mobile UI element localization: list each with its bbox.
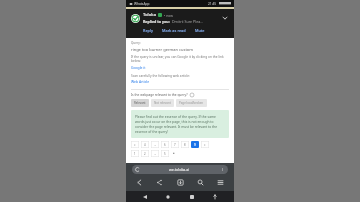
staticText: Is the webpage relevant to the query? bbox=[131, 93, 188, 97]
button[interactable]: Not relevant bbox=[151, 99, 174, 107]
button[interactable]: 6 bbox=[161, 141, 169, 148]
staticText: 2 bbox=[144, 152, 146, 156]
button[interactable]: » bbox=[201, 141, 209, 148]
staticText: 9 bbox=[194, 143, 196, 147]
staticText: ▪ bbox=[173, 152, 175, 155]
button[interactable]: Relevant bbox=[131, 99, 149, 107]
staticText: 5 bbox=[164, 152, 166, 156]
staticText: … bbox=[154, 143, 157, 147]
button[interactable]: Google it bbox=[131, 65, 146, 70]
staticText: Reply bbox=[143, 28, 153, 33]
button[interactable]: 7 bbox=[171, 141, 179, 148]
staticText: 7 bbox=[174, 143, 176, 147]
button[interactable]: Share bbox=[154, 177, 165, 188]
staticText: 21:45 bbox=[208, 2, 217, 6]
button[interactable]: « bbox=[131, 141, 139, 148]
staticText: » bbox=[204, 143, 206, 147]
staticText: Relevant bbox=[134, 101, 146, 105]
staticText: 6 bbox=[164, 143, 166, 147]
staticText: 1 bbox=[134, 152, 136, 156]
button[interactable]: Expand notification bbox=[221, 14, 229, 22]
button[interactable]: 2 bbox=[141, 150, 149, 157]
staticText: Query: bbox=[131, 41, 141, 45]
button[interactable]: Keyboard bbox=[210, 192, 220, 202]
staticText: Mark as read bbox=[162, 28, 186, 33]
staticText: ringe too burner german custom bbox=[131, 47, 194, 52]
button[interactable]: Back bbox=[140, 192, 150, 202]
button[interactable]: Mute bbox=[194, 27, 206, 34]
staticText: Dmitrii Sure Plea... bbox=[172, 19, 204, 24]
button[interactable]: Search bbox=[195, 177, 206, 188]
button[interactable]: 4 bbox=[141, 141, 149, 148]
button[interactable]: Web Article bbox=[131, 79, 150, 84]
button[interactable]: Home bbox=[163, 192, 173, 202]
staticText: … bbox=[154, 152, 157, 156]
button[interactable]: 5 bbox=[161, 150, 169, 157]
staticText: 4 bbox=[144, 143, 146, 147]
staticText: Mute bbox=[195, 28, 205, 33]
button[interactable]: 1 bbox=[131, 150, 139, 157]
button[interactable]: Menu bbox=[215, 177, 226, 188]
button[interactable]: Page load/broken bbox=[176, 99, 207, 107]
staticText: • now bbox=[164, 13, 173, 18]
staticText: we.toloka.ai bbox=[169, 167, 190, 172]
staticText: Replied to you: bbox=[143, 19, 170, 24]
staticText: Google it bbox=[131, 65, 146, 70]
staticText: Please find out the essence of the query… bbox=[135, 114, 225, 134]
staticText: Scan carefully the following web article… bbox=[131, 74, 190, 78]
button[interactable]: More options bbox=[220, 167, 225, 172]
button[interactable]: Back bbox=[134, 177, 145, 188]
staticText: Not relevant bbox=[154, 101, 171, 105]
staticText: Page load/broken bbox=[179, 101, 204, 105]
button[interactable]: Reply bbox=[142, 27, 154, 34]
button[interactable]: 8 bbox=[181, 141, 189, 148]
button[interactable]: Reload bbox=[132, 165, 228, 174]
button[interactable]: … bbox=[151, 141, 159, 148]
staticText: « bbox=[134, 143, 136, 147]
button[interactable]: Toloka bbox=[128, 10, 232, 37]
button[interactable]: Recents bbox=[187, 192, 197, 202]
staticText: WhatsApp bbox=[134, 2, 150, 6]
other: Reload bbox=[135, 167, 140, 172]
staticText: If the query is unclear, you can Google … bbox=[131, 55, 229, 63]
button[interactable]: … bbox=[151, 150, 159, 157]
button[interactable]: 9 bbox=[191, 141, 199, 148]
button[interactable]: Downloads bbox=[175, 177, 186, 188]
staticText: Web Article bbox=[131, 79, 150, 84]
staticText: Toloka bbox=[143, 12, 157, 18]
staticText: 8 bbox=[184, 143, 186, 147]
button[interactable]: Mark as read bbox=[161, 27, 187, 34]
